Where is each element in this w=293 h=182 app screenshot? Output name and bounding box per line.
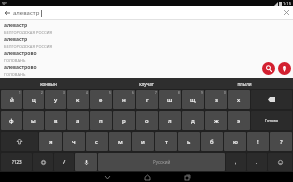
button[interactable]: ? [270, 132, 292, 151]
button[interactable]: р [113, 111, 135, 130]
button[interactable]: / [54, 153, 74, 171]
button[interactable]: о [136, 111, 158, 130]
staticText: 4 [86, 91, 88, 95]
button[interactable]: конвын [0, 78, 97, 89]
button[interactable]: м [109, 132, 131, 151]
button[interactable]: з [205, 90, 227, 109]
button[interactable]: ы [23, 111, 44, 130]
staticText: 3 [63, 91, 65, 95]
staticText: у [54, 96, 58, 104]
button[interactable]: к [67, 90, 89, 109]
button[interactable]: . [247, 153, 267, 171]
staticText: ь [187, 138, 191, 146]
button[interactable]: Русский [98, 153, 225, 171]
button[interactable]: п [90, 111, 112, 130]
button[interactable]: г [136, 90, 158, 109]
button[interactable]: Search [262, 62, 275, 75]
staticText: алевастр [13, 9, 40, 17]
staticText: 2 [41, 91, 43, 95]
staticText: щ [190, 96, 196, 104]
button[interactable]: е [90, 90, 112, 109]
button[interactable]: и [132, 132, 154, 151]
button[interactable]: ч [63, 132, 85, 151]
button[interactable]: в [45, 111, 66, 130]
staticText: БЕЛГОРОДСКАЯ РОССИЯ [4, 44, 53, 48]
staticText: я [49, 138, 53, 146]
staticText: л [168, 117, 172, 125]
button[interactable]: щ [182, 90, 204, 109]
button[interactable]: я [39, 132, 62, 151]
staticText: ю [233, 138, 238, 146]
staticText: о [145, 117, 149, 125]
button[interactable]: ю [224, 132, 246, 151]
button[interactable]: й [1, 90, 22, 109]
staticText: д [191, 117, 195, 125]
button[interactable]: ф [1, 111, 22, 130]
staticText: ? [280, 138, 283, 146]
button[interactable]: у [45, 90, 66, 109]
staticText: алевастрово [4, 50, 37, 57]
button[interactable]: клучат [97, 78, 195, 89]
button[interactable]: л [159, 111, 181, 130]
staticText: ц [32, 96, 36, 104]
staticText: с [95, 138, 99, 146]
staticText: ж [214, 117, 219, 125]
button[interactable]: плыли [195, 78, 293, 89]
staticText: ф [9, 117, 14, 125]
button[interactable]: Clear [280, 6, 293, 19]
button[interactable]: ь [178, 132, 200, 151]
button[interactable]: алевастр [0, 34, 293, 48]
button[interactable]: э [228, 111, 250, 130]
staticText: к [76, 96, 80, 104]
button[interactable]: , [226, 153, 246, 171]
staticText: 9 [201, 91, 203, 95]
staticText: Русский [153, 159, 171, 165]
button[interactable]: Voice input [75, 153, 97, 171]
staticText: й [10, 96, 14, 104]
staticText: т [165, 138, 168, 146]
staticText: 1 [19, 91, 21, 95]
button[interactable]: Emoji [268, 153, 292, 171]
button[interactable]: ж [205, 111, 227, 130]
button[interactable]: т [155, 132, 177, 151]
staticText: х [237, 96, 241, 104]
staticText: YP [2, 1, 7, 6]
staticText: з [215, 96, 218, 104]
button[interactable]: х [228, 90, 250, 109]
button[interactable]: ц [23, 90, 44, 109]
button[interactable]: алевастр [0, 20, 293, 34]
button[interactable]: Recent apps [167, 172, 207, 182]
button[interactable]: Готово [251, 111, 292, 130]
staticText: 5 [109, 91, 111, 95]
staticText: а [76, 117, 80, 125]
staticText: алевастр [4, 22, 28, 29]
button[interactable]: ?123 [1, 153, 32, 171]
staticText: плыли [237, 81, 252, 87]
button[interactable]: алевастрово [0, 48, 293, 62]
button[interactable]: Settings [33, 153, 53, 171]
staticText: ГОЛОВАНЬ [4, 72, 26, 76]
staticText: алевастр [4, 36, 28, 43]
button[interactable]: Home [127, 172, 167, 182]
button[interactable]: ! [247, 132, 269, 151]
button[interactable]: б [201, 132, 223, 151]
button[interactable]: Backspace [251, 90, 292, 109]
button[interactable]: с [86, 132, 108, 151]
button[interactable]: алевастрово [0, 62, 293, 76]
staticText: р [122, 117, 126, 125]
button[interactable]: а [67, 111, 89, 130]
staticText: 6 [132, 91, 134, 95]
button[interactable]: ш [159, 90, 181, 109]
button[interactable]: Shift [1, 132, 38, 151]
button[interactable]: Location [278, 62, 291, 75]
button[interactable]: Back [87, 172, 127, 182]
button[interactable]: алевастр [13, 6, 280, 19]
staticText: н [122, 96, 126, 104]
button[interactable]: Back [0, 6, 13, 19]
button[interactable]: н [113, 90, 135, 109]
button[interactable]: д [182, 111, 204, 130]
staticText: 1:15 [283, 1, 291, 6]
staticText: / [63, 158, 66, 166]
staticText: ы [31, 117, 36, 125]
staticText: п [99, 117, 103, 125]
